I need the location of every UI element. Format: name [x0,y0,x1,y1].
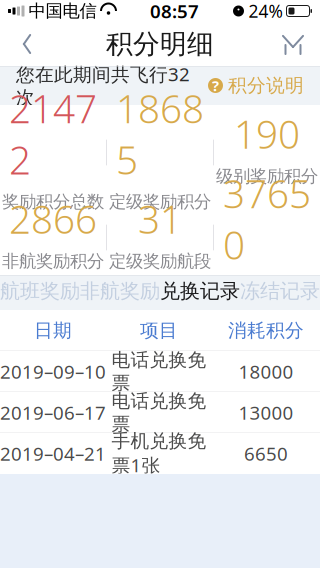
button[interactable]: 冻结记录 [240,275,320,310]
button[interactable]: 非航奖励 [80,275,160,310]
staticText: 日期 [34,319,72,342]
staticText: 航班奖励 [0,279,80,303]
staticText: 定级奖励积分 [109,191,211,212]
staticText: 2866 [9,193,97,244]
button[interactable]: 首页 [270,22,316,66]
staticText: 电话兑换免票 [111,390,206,435]
staticText: 24% [248,0,282,22]
staticText: 2019–09–10 [0,359,106,384]
staticText: ? [212,76,219,95]
button[interactable]: 兑换记录 [160,275,240,310]
staticText: 手机兑换免票1张 [111,430,206,477]
staticText: 18685 [116,82,204,185]
staticText: 消耗积分 [228,319,304,342]
staticText: 冻结记录 [240,279,320,303]
staticText: 08:57 [150,0,199,23]
button[interactable]: 2019–04–21 [0,433,320,474]
staticText: 2019–04–21 [0,441,106,466]
button[interactable]: 2019–09–10 [0,351,320,392]
staticText: 6650 [244,441,288,466]
staticText: 37650 [223,167,311,270]
button[interactable]: 2019–06–17 [0,392,320,433]
staticText: 中国电信 [28,0,96,22]
button[interactable]: 返回 [4,22,50,66]
staticText: 定级奖励航段 [109,250,211,272]
button[interactable]: ? [208,74,304,97]
button[interactable]: 航班奖励 [0,275,80,310]
staticText: 18000 [238,359,293,384]
staticText: 级别奖励积分 [216,165,318,187]
staticText: 21472 [9,82,97,185]
staticText: 积分明细 [106,28,214,60]
staticText: 非航奖励积分 [2,250,104,272]
staticText: 31 [138,193,182,244]
staticText: 兑换记录 [160,279,240,303]
staticText: 电话兑换免票 [111,349,206,394]
staticText: 项目 [140,319,178,342]
staticText: 13000 [238,400,293,425]
staticText: 积分说明 [228,74,304,97]
staticText: 190 [234,108,300,159]
staticText: 兑换积分总数 [216,276,318,297]
staticText: 2019–06–17 [0,400,106,425]
staticText: 非航奖励 [80,279,160,303]
staticText: 奖励积分总数 [2,191,104,212]
staticText: 您在此期间共飞行32次 [16,62,190,109]
